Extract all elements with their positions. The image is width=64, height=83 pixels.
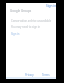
staticText: Privacy — [25, 73, 34, 77]
staticText: You may need to sign in — [11, 25, 41, 29]
staticText: Sign in — [11, 32, 20, 36]
staticText: Terms — [42, 73, 50, 77]
staticText: Conversation archive unavailable — [11, 19, 52, 23]
staticText: Sign in — [46, 4, 57, 8]
staticText: Google Groups — [10, 9, 32, 13]
